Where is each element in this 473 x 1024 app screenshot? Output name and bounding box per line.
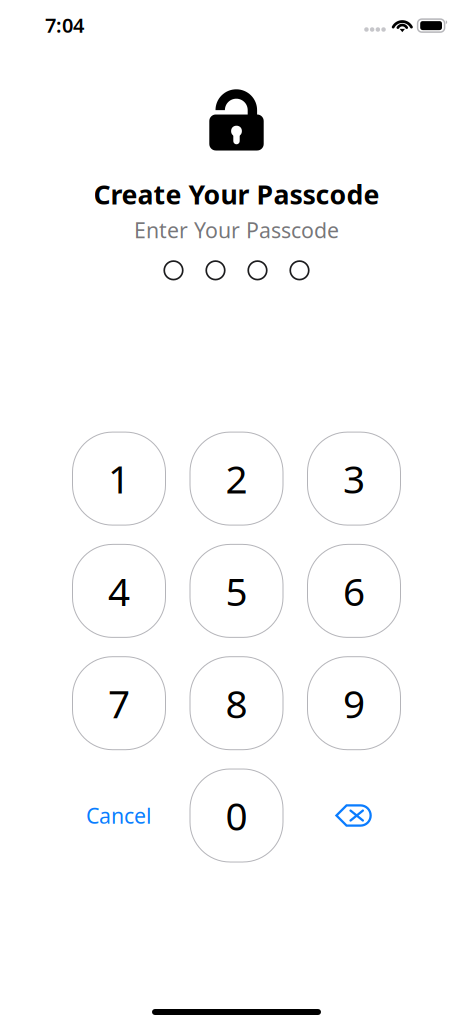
staticText: Enter Your Passcode: [134, 216, 339, 244]
staticText: 9: [343, 677, 365, 729]
staticText: 4: [108, 565, 130, 616]
button[interactable]: 3: [307, 432, 400, 525]
button[interactable]: 0: [190, 769, 283, 862]
staticText: 0: [225, 790, 247, 841]
button[interactable]: 9: [307, 657, 400, 750]
button[interactable]: 8: [190, 657, 283, 750]
button[interactable]: Delete: [307, 769, 400, 862]
staticText: 7:04: [45, 12, 84, 38]
staticText: Cancel: [86, 801, 152, 830]
button[interactable]: Cancel: [72, 769, 165, 862]
button[interactable]: 5: [190, 544, 283, 637]
staticText: 1: [108, 453, 130, 504]
staticText: Create Your Passcode: [93, 176, 379, 212]
staticText: 2: [225, 453, 247, 504]
staticText: 7: [108, 677, 130, 729]
staticText: 5: [225, 565, 247, 616]
button[interactable]: 1: [72, 432, 165, 525]
button[interactable]: 7: [72, 657, 165, 750]
button[interactable]: 4: [72, 544, 165, 637]
button[interactable]: 6: [307, 544, 400, 637]
staticText: 3: [343, 453, 365, 504]
staticText: 6: [343, 565, 365, 616]
staticText: 8: [225, 677, 247, 729]
button[interactable]: 2: [190, 432, 283, 525]
